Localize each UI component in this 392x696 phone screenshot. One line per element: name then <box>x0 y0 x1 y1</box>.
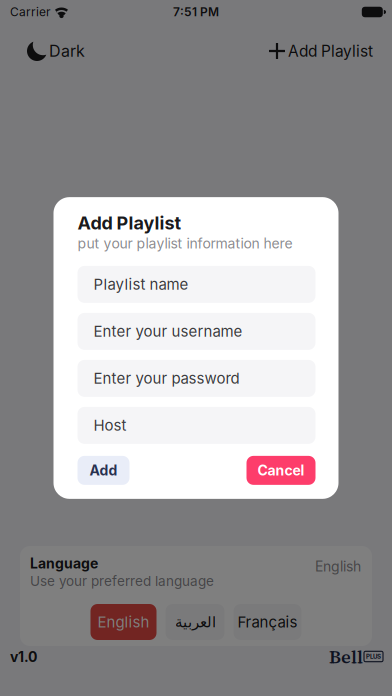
staticText: English <box>97 613 149 631</box>
staticText: 7:51 PM <box>173 5 219 19</box>
staticText: Enter your password <box>93 369 239 387</box>
staticText: Français <box>237 613 297 631</box>
staticText: v1.0 <box>10 648 37 665</box>
staticText: Playlist name <box>93 275 188 293</box>
button[interactable]: Français <box>233 604 301 640</box>
staticText: Cancel <box>257 462 304 479</box>
button[interactable]: Add Playlist <box>269 36 373 66</box>
button[interactable]: العربية <box>165 604 224 640</box>
staticText: Language <box>30 555 98 572</box>
staticText: Add Playlist <box>77 212 181 234</box>
staticText: Use your preferred language <box>30 573 214 589</box>
button[interactable]: Cancel <box>246 456 315 485</box>
staticText: Add Playlist <box>288 42 373 60</box>
staticText: English <box>315 558 361 575</box>
button[interactable]: English <box>90 604 156 640</box>
staticText: Host <box>93 416 126 434</box>
button[interactable]: Add <box>77 456 129 485</box>
staticText: Carrier <box>10 5 51 19</box>
staticText: Dark <box>49 41 85 61</box>
button[interactable]: Dark <box>27 35 85 67</box>
staticText: Bell <box>329 645 363 669</box>
staticText: Add your playlist to get started here <box>60 297 332 316</box>
staticText: put your playlist information here <box>77 235 292 252</box>
staticText: Enter your username <box>93 322 242 340</box>
staticText: Add <box>89 462 117 479</box>
staticText: العربية <box>174 613 215 631</box>
staticText: PLUS <box>366 653 381 660</box>
